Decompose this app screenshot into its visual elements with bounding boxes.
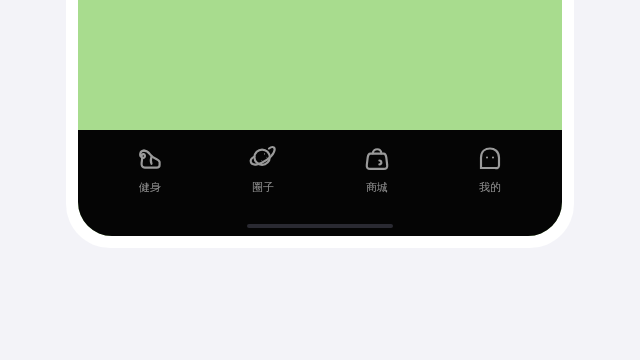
button[interactable]: 圈子 [221, 142, 305, 196]
staticText: 我的 [479, 180, 501, 194]
button[interactable]: 商城 [335, 142, 419, 196]
staticText: 商城 [366, 180, 388, 194]
button[interactable]: 我的 [448, 142, 532, 196]
staticText: 健身 [139, 180, 161, 194]
button[interactable]: 健身 [108, 142, 192, 196]
staticText: 圈子 [252, 180, 274, 194]
